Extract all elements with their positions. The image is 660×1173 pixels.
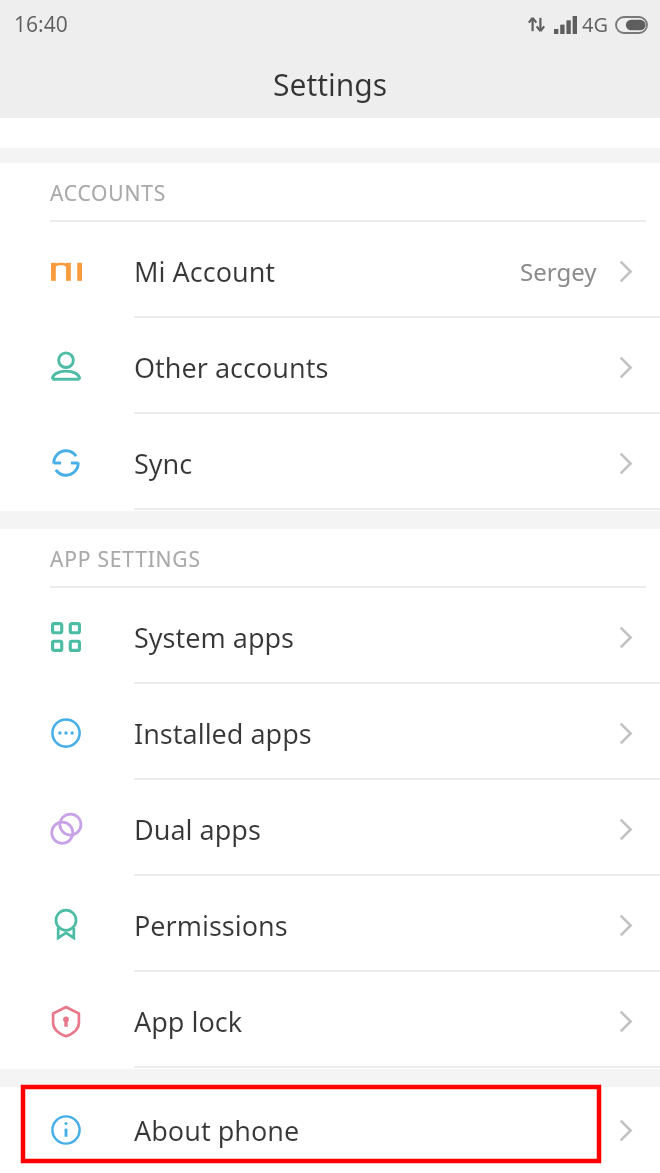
staticText: Sync	[134, 445, 193, 482]
button[interactable]: Permissions	[0, 877, 660, 973]
staticText: 16:40	[14, 10, 68, 39]
staticText: System apps	[134, 619, 295, 656]
button[interactable]: Mi	[0, 223, 660, 319]
staticText: App lock	[134, 1003, 243, 1040]
staticText: Settings	[273, 64, 388, 105]
staticText: ACCOUNTS	[50, 179, 167, 208]
button[interactable]: Other accounts	[0, 319, 660, 415]
staticText: Other accounts	[134, 349, 329, 386]
button[interactable]: Installed apps	[0, 685, 660, 781]
button[interactable]: System apps	[0, 589, 660, 685]
staticText: 4G	[582, 11, 608, 38]
staticText: About phone	[134, 1112, 300, 1149]
staticText: Mi Account	[134, 253, 276, 290]
staticText: Permissions	[134, 907, 288, 944]
staticText: Dual apps	[134, 811, 261, 848]
staticText: Installed apps	[134, 715, 312, 752]
button[interactable]: App lock	[0, 973, 660, 1069]
button[interactable]: Dual apps	[0, 781, 660, 877]
button[interactable]: About phone	[0, 1087, 660, 1173]
button[interactable]: Sync	[0, 415, 660, 511]
other: Mi	[51, 256, 82, 287]
staticText: APP SETTINGS	[50, 545, 201, 574]
staticText: Sergey	[520, 255, 597, 288]
